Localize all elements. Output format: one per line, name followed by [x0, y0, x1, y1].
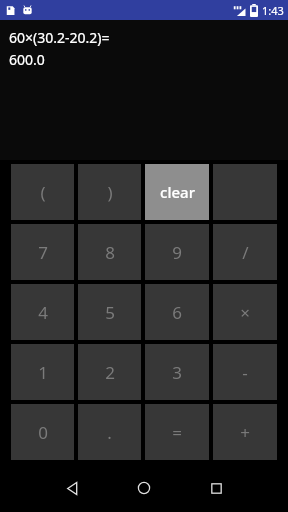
button[interactable]: = [145, 404, 209, 460]
staticText: / [242, 241, 249, 264]
staticText: clear [160, 182, 195, 202]
staticText: ( [40, 181, 46, 204]
staticText: 2 [105, 361, 115, 384]
button[interactable]: + [213, 404, 277, 460]
staticText: 6 [172, 301, 182, 324]
button[interactable]: 8 [78, 224, 141, 280]
staticText: 600.0 [9, 50, 45, 69]
button[interactable]: Home [108, 464, 180, 512]
staticText: 5 [105, 301, 115, 324]
button[interactable]: ) [78, 164, 141, 220]
button[interactable]: 3 [145, 344, 209, 400]
staticText: . [107, 421, 112, 444]
staticText: 1:43 [262, 3, 284, 18]
staticText: × [240, 301, 250, 324]
button[interactable]: 6 [145, 284, 209, 340]
staticText: 4 [38, 301, 48, 324]
button[interactable]: 5 [78, 284, 141, 340]
button[interactable]: / [213, 224, 277, 280]
button[interactable]: 4 [11, 284, 74, 340]
button[interactable]: × [213, 284, 277, 340]
button[interactable]: ( [11, 164, 74, 220]
button[interactable]: 2 [78, 344, 141, 400]
button[interactable]: 9 [145, 224, 209, 280]
button[interactable]: Recents [180, 464, 252, 512]
staticText: = [172, 421, 182, 444]
button[interactable]: 7 [11, 224, 74, 280]
staticText: 60×(30.2-20.2)= [9, 28, 110, 47]
staticText: 7 [38, 241, 48, 264]
button[interactable]: clear [145, 164, 209, 220]
staticText: + [240, 421, 250, 444]
staticText: 1 [38, 361, 48, 384]
staticText: 9 [172, 241, 182, 264]
button[interactable]: 1 [11, 344, 74, 400]
staticText: ) [107, 181, 113, 204]
staticText: - [242, 361, 248, 384]
staticText: 0 [38, 421, 48, 444]
button[interactable]: Back [36, 464, 108, 512]
staticText: 3 [172, 361, 182, 384]
button[interactable]: 0 [11, 404, 74, 460]
staticText: 8 [105, 241, 115, 264]
